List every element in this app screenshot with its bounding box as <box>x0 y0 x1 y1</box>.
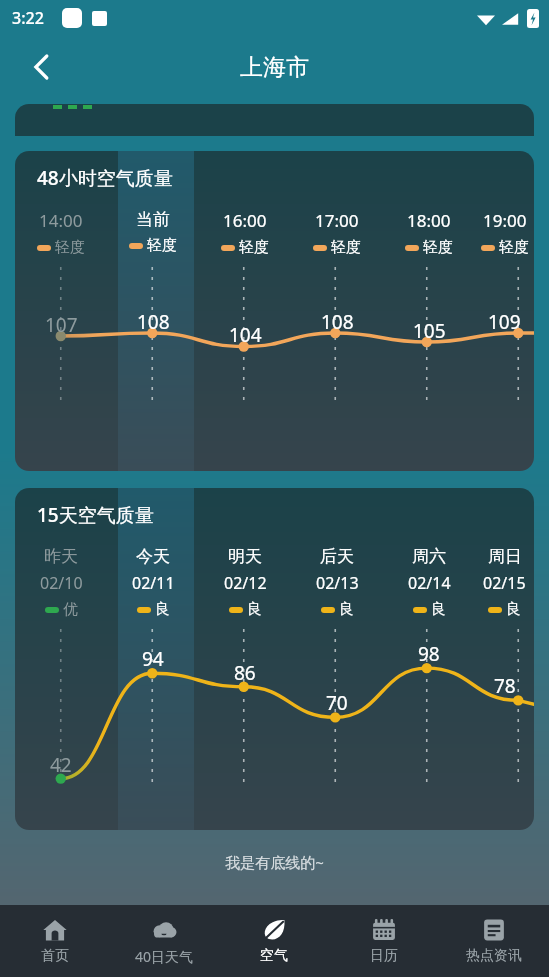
staticText: 我是有底线的~ <box>0 852 549 872</box>
staticText: 良 <box>431 600 446 619</box>
staticText: 轻度 <box>331 238 361 257</box>
staticText: 109 <box>488 309 521 335</box>
staticText: 42 <box>50 752 72 778</box>
staticText: 后天 <box>320 546 354 567</box>
staticText: 78 <box>494 673 516 699</box>
staticText: 上海市 <box>240 53 309 82</box>
staticText: 108 <box>137 309 170 335</box>
staticText: 98 <box>418 641 440 667</box>
staticText: 良 <box>247 600 262 619</box>
staticText: 16:00 <box>223 209 267 232</box>
staticText: 86 <box>234 660 256 686</box>
staticText: 空气 <box>260 947 288 965</box>
staticText: 日历 <box>370 947 398 965</box>
staticText: 108 <box>321 309 354 335</box>
button[interactable]: 日历 <box>329 905 439 977</box>
staticText: 昨天 <box>44 546 78 567</box>
staticText: 02/14 <box>408 572 451 594</box>
staticText: 良 <box>506 600 521 619</box>
staticText: 轻度 <box>423 238 453 257</box>
staticText: 02/13 <box>316 572 359 594</box>
staticText: 热点资讯 <box>466 947 522 965</box>
staticText: 良 <box>155 600 170 619</box>
staticText: 周日 <box>488 546 522 567</box>
staticText: 02/11 <box>132 572 175 594</box>
staticText: 轻度 <box>55 238 85 257</box>
staticText: 17:00 <box>315 209 359 232</box>
staticText: 3:22 <box>12 7 44 29</box>
button[interactable]: Back <box>18 43 66 91</box>
staticText: 107 <box>45 312 78 338</box>
staticText: 94 <box>142 646 164 672</box>
staticText: 02/15 <box>483 572 526 594</box>
staticText: 14:00 <box>39 209 83 232</box>
button[interactable]: 48小时空气质量 <box>15 151 534 471</box>
staticText: 40日天气 <box>135 947 194 966</box>
staticText: 70 <box>326 690 348 716</box>
staticText: 19:00 <box>483 209 527 232</box>
staticText: 02/10 <box>40 572 83 594</box>
button[interactable]: 40日天气 <box>109 905 219 977</box>
staticText: 轻度 <box>499 238 529 257</box>
staticText: 轻度 <box>147 236 177 255</box>
staticText: 周六 <box>412 546 446 567</box>
staticText: 良 <box>339 600 354 619</box>
staticText: 当前 <box>136 209 170 230</box>
staticText: 轻度 <box>239 238 269 257</box>
button[interactable]: 空气 <box>219 905 329 977</box>
staticText: 今天 <box>136 546 170 567</box>
staticText: 明天 <box>228 546 262 567</box>
staticText: 104 <box>229 322 262 348</box>
staticText: 18:00 <box>407 209 451 232</box>
button[interactable]: 热点资讯 <box>439 905 549 977</box>
staticText: 15天空气质量 <box>37 502 154 528</box>
button[interactable]: 15天空气质量 <box>15 488 534 830</box>
button[interactable]: 首页 <box>0 905 109 977</box>
staticText: 首页 <box>41 947 69 965</box>
staticText: 105 <box>413 318 446 344</box>
staticText: 02/12 <box>224 572 267 594</box>
staticText: 优 <box>63 600 78 619</box>
staticText: 48小时空气质量 <box>37 165 173 191</box>
